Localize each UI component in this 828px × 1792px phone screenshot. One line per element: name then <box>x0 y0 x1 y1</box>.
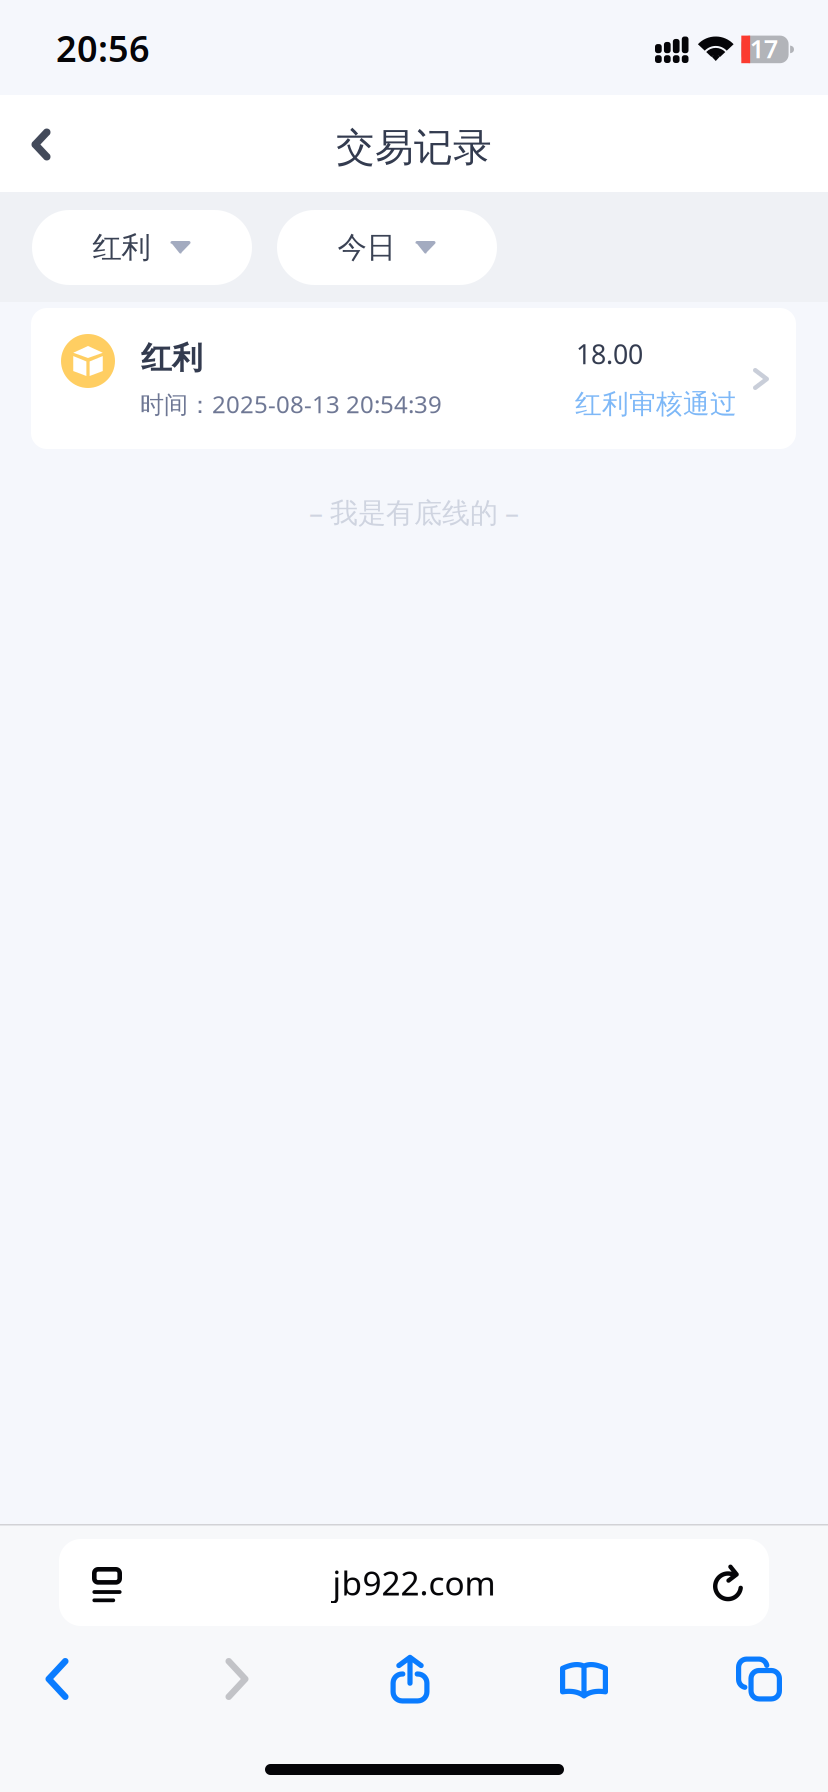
staticText: – 我是有底线的 – <box>309 493 519 531</box>
button[interactable]: Forward <box>180 1637 294 1721</box>
staticText: 交易记录 <box>336 124 492 171</box>
button[interactable]: Reload <box>683 1541 773 1628</box>
staticText: 红利审核通过 <box>575 388 737 420</box>
staticText: 红利 <box>92 229 150 265</box>
staticText: 今日 <box>337 229 395 265</box>
staticText: 时间：2025-08-13 20:54:39 <box>140 388 442 420</box>
button[interactable]: Back <box>0 1637 114 1721</box>
staticText: 红利 <box>141 339 203 377</box>
button[interactable]: 今日 <box>277 210 497 285</box>
button[interactable]: Tabs <box>702 1637 816 1721</box>
staticText: 20:56 <box>56 24 150 72</box>
button[interactable]: Share <box>353 1637 467 1721</box>
button[interactable]: Page settings <box>59 1541 155 1628</box>
staticText: jb922.com <box>332 1560 495 1605</box>
button[interactable]: Back <box>0 96 82 193</box>
staticText: 17 <box>750 32 778 65</box>
button[interactable]: 红利 <box>31 308 796 449</box>
button[interactable]: 红利 <box>32 210 252 285</box>
staticText: 18.00 <box>576 336 643 372</box>
button[interactable]: Bookmarks <box>527 1637 641 1721</box>
